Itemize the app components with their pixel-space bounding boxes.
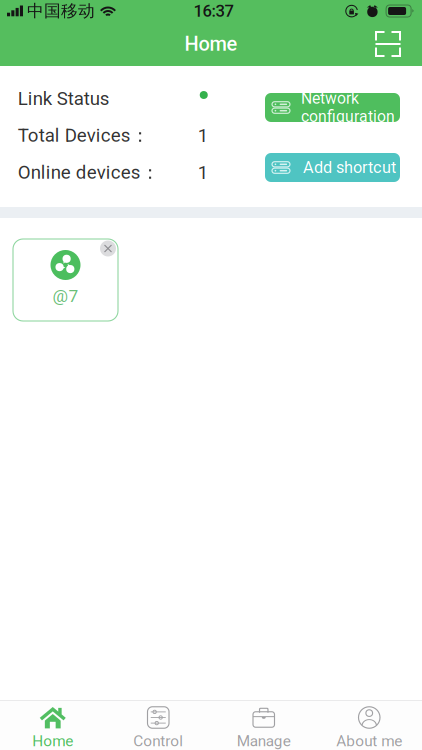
staticText: Network: [301, 89, 359, 107]
staticText: About me: [336, 732, 402, 750]
staticText: Home: [32, 732, 73, 750]
button[interactable]: Scan QR code: [366, 22, 410, 66]
staticText: Control: [133, 732, 183, 750]
staticText: Manage: [237, 732, 291, 750]
button[interactable]: Remove device: [100, 240, 116, 256]
button[interactable]: Add shortcut: [265, 153, 400, 182]
staticText: Total Devices：: [18, 124, 150, 147]
staticText: Home: [184, 32, 237, 56]
staticText: 中国移动: [27, 0, 95, 21]
staticText: 16:37: [193, 1, 233, 21]
staticText: @7: [52, 286, 78, 306]
staticText: 1: [198, 125, 208, 146]
button[interactable]: About me: [316, 701, 422, 750]
staticText: Add shortcut: [303, 158, 396, 177]
button[interactable]: Network: [265, 93, 400, 122]
button[interactable]: Control: [105, 701, 211, 750]
button[interactable]: @7: [13, 239, 118, 321]
staticText: 1: [198, 162, 208, 183]
staticText: configuration: [301, 107, 395, 126]
button[interactable]: Home: [0, 701, 105, 750]
staticText: Online devices：: [18, 161, 160, 184]
button[interactable]: Manage: [211, 701, 316, 750]
staticText: Link Status: [18, 88, 110, 109]
